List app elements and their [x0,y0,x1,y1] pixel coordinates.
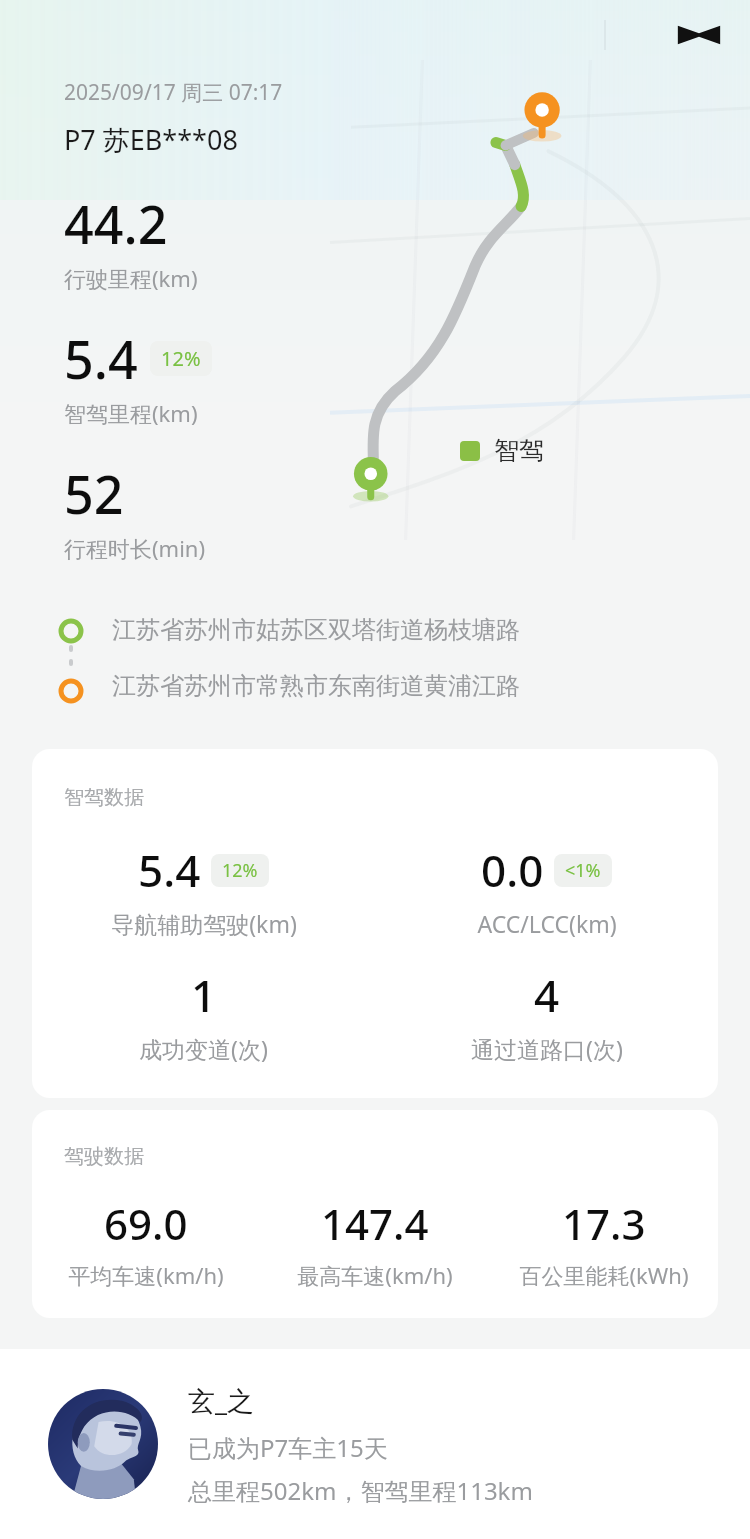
button[interactable]: 智驾 [460,435,544,466]
staticText: 0.0 [481,840,544,900]
staticText: 江苏省苏州市姑苏区双塔街道杨枝塘路 [112,615,520,645]
staticText: 玄_之 [188,1382,254,1419]
button[interactable]: 147.4 [260,1195,489,1290]
button[interactable]: 驾驶数据 [32,1110,718,1318]
staticText: 5.4 [138,840,201,900]
button[interactable]: 智驾数据 [32,749,718,1098]
staticText: 平均车速(km/h) [68,1260,224,1290]
staticText: 智驾 [494,435,544,466]
button[interactable]: 0.0 [375,840,718,939]
staticText: ACC/LCC(km) [477,908,617,939]
staticText: 导航辅助驾驶(km) [111,908,297,939]
staticText: 行程时长(min) [64,533,206,563]
staticText: 成功变道(次) [139,1033,268,1064]
staticText: 智驾数据 [64,785,144,810]
button[interactable]: 69.0 [32,1195,260,1290]
staticText: 江苏省苏州市常熟市东南街道黄浦江路 [112,671,520,701]
button[interactable]: 1 [32,965,375,1064]
button[interactable]: 17.3 [489,1195,718,1290]
staticText: 4 [534,965,560,1025]
staticText: 147.4 [321,1195,429,1252]
staticText: 2025/09/17 周三 07:17 [64,78,283,107]
staticText: 通过道路口(次) [471,1033,623,1064]
button[interactable]: XPeng logo [676,12,722,58]
staticText: 5.4 [64,323,138,394]
staticText: P7 苏EB***08 [64,121,238,158]
staticText: 52 [64,458,124,529]
staticText: 智驾里程(km) [64,398,198,428]
staticText: 69.0 [104,1195,188,1252]
staticText: 12% [222,858,258,883]
staticText: 行驶里程(km) [64,263,198,293]
staticText: 总里程502km，智驾里程113km [188,1474,533,1507]
button[interactable]: 玄_之 [0,1349,750,1539]
button[interactable]: 4 [375,965,718,1064]
staticText: 最高车速(km/h) [297,1260,453,1290]
staticText: 44.2 [64,188,168,259]
staticText: 1 [191,965,217,1025]
button[interactable]: 5.4 [32,840,375,939]
staticText: 驾驶数据 [64,1144,144,1169]
staticText: 12% [161,345,201,372]
staticText: 百公里能耗(kWh) [519,1260,689,1290]
staticText: 17.3 [562,1195,646,1252]
staticText: <1% [565,858,601,883]
staticText: 已成为P7车主15天 [188,1431,388,1464]
